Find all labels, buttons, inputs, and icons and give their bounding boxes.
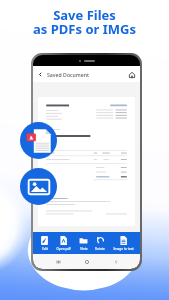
button[interactable]: Rotate xyxy=(94,236,106,251)
button[interactable]: Save as PDF xyxy=(20,122,57,159)
button[interactable]: Edit xyxy=(39,236,50,251)
staticText: Saved Document xyxy=(47,71,89,78)
button[interactable]: Recents xyxy=(53,257,62,266)
staticText: Note xyxy=(80,247,88,251)
button[interactable]: Back xyxy=(111,257,120,266)
staticText: Rotate xyxy=(95,247,105,251)
staticText: Image to text xyxy=(113,247,134,251)
staticText: Edit xyxy=(42,247,48,251)
button[interactable]: Home xyxy=(128,71,135,78)
button[interactable]: Back xyxy=(37,71,44,78)
button[interactable]: Save as image xyxy=(20,168,57,205)
button[interactable]: Note xyxy=(78,236,89,251)
staticText: Open pdf xyxy=(56,247,71,251)
staticText: Save Files as PDFs or IMGs xyxy=(0,6,169,38)
button[interactable]: Home xyxy=(82,257,91,266)
button[interactable]: Open pdf xyxy=(55,236,72,251)
button[interactable]: Image to text xyxy=(112,236,135,251)
